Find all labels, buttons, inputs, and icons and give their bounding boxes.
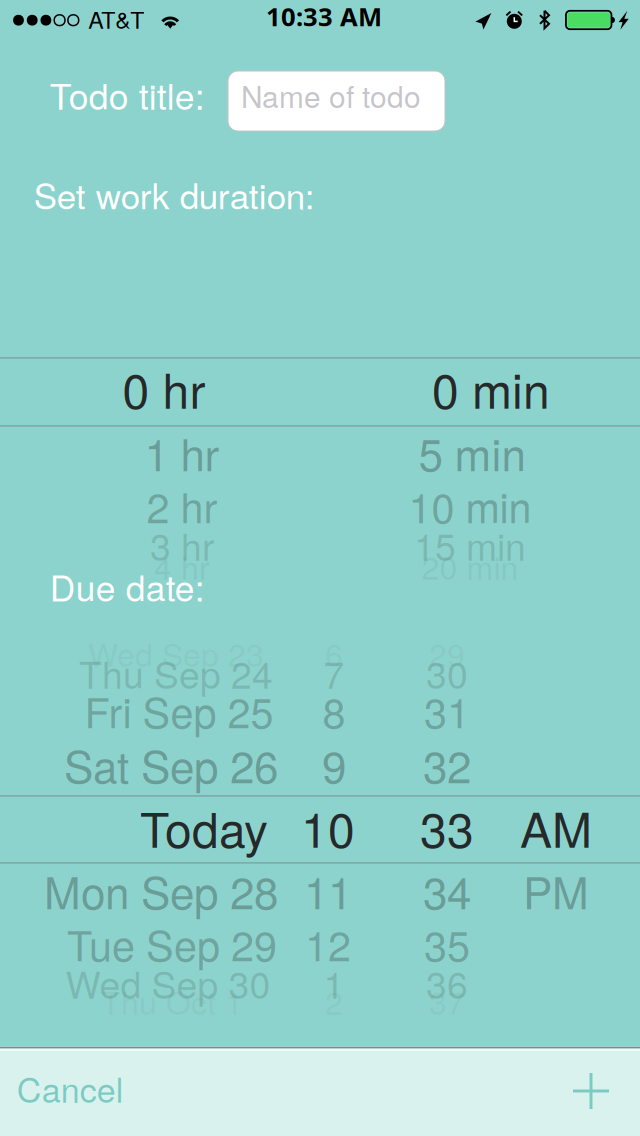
staticText: 15 min (414, 518, 526, 571)
button[interactable]: Name of todo (228, 71, 445, 131)
staticText: Thu Oct 1 (101, 978, 243, 1024)
button[interactable]: Cancel (0, 1064, 140, 1134)
staticText: 1 (323, 956, 344, 1009)
staticText: Sat Sep 26 (64, 733, 278, 796)
staticText: 2 (325, 978, 343, 1024)
staticText: Set work duration: (34, 169, 315, 219)
staticText: 31 (424, 681, 470, 740)
staticText: AM (520, 793, 592, 861)
staticText: 7 (323, 646, 344, 699)
staticText: 12 (305, 914, 351, 973)
staticText: Fri Sep 25 (84, 681, 273, 740)
staticText: 6 (325, 630, 343, 676)
staticText: 30 (426, 646, 468, 699)
staticText: 37 (429, 978, 465, 1024)
staticText: 34 (423, 859, 471, 922)
staticText: Thu Sep 24 (79, 646, 273, 699)
staticText: 3 hr (150, 518, 214, 571)
staticText: Name of todo (241, 74, 421, 116)
staticText: 33 (420, 793, 474, 861)
staticText: Cancel (17, 1064, 124, 1112)
staticText: 11 (304, 859, 352, 922)
staticText: Today (140, 793, 268, 861)
staticText: Wed Sep 23 (88, 630, 264, 676)
staticText: 36 (426, 956, 468, 1009)
staticText: Tue Sep 29 (67, 914, 277, 973)
staticText: 10:33 AM (266, 0, 382, 34)
staticText: 2 hr (146, 476, 217, 535)
staticText: 4 hr (154, 543, 210, 589)
staticText: 0 hr (122, 354, 205, 422)
staticText: 0 min (432, 354, 550, 422)
staticText: Due date: (50, 561, 205, 612)
staticText: Todo title: (50, 69, 205, 120)
staticText: 9 (322, 733, 346, 796)
staticText: Mon Sep 28 (44, 859, 278, 922)
button[interactable]: Add todo (557, 1052, 625, 1130)
staticText: 8 (322, 681, 345, 740)
staticText: 5 min (418, 421, 525, 484)
staticText: AT&T (88, 2, 144, 35)
staticText: 10 min (408, 476, 531, 535)
staticText: Wed Sep 30 (65, 956, 270, 1009)
staticText: 10 (301, 793, 355, 861)
staticText: 35 (424, 914, 470, 973)
staticText: 1 hr (144, 421, 219, 484)
staticText: PM (523, 859, 589, 922)
staticText: 29 (429, 630, 465, 676)
staticText: 32 (423, 733, 471, 796)
staticText: 20 min (421, 543, 518, 589)
